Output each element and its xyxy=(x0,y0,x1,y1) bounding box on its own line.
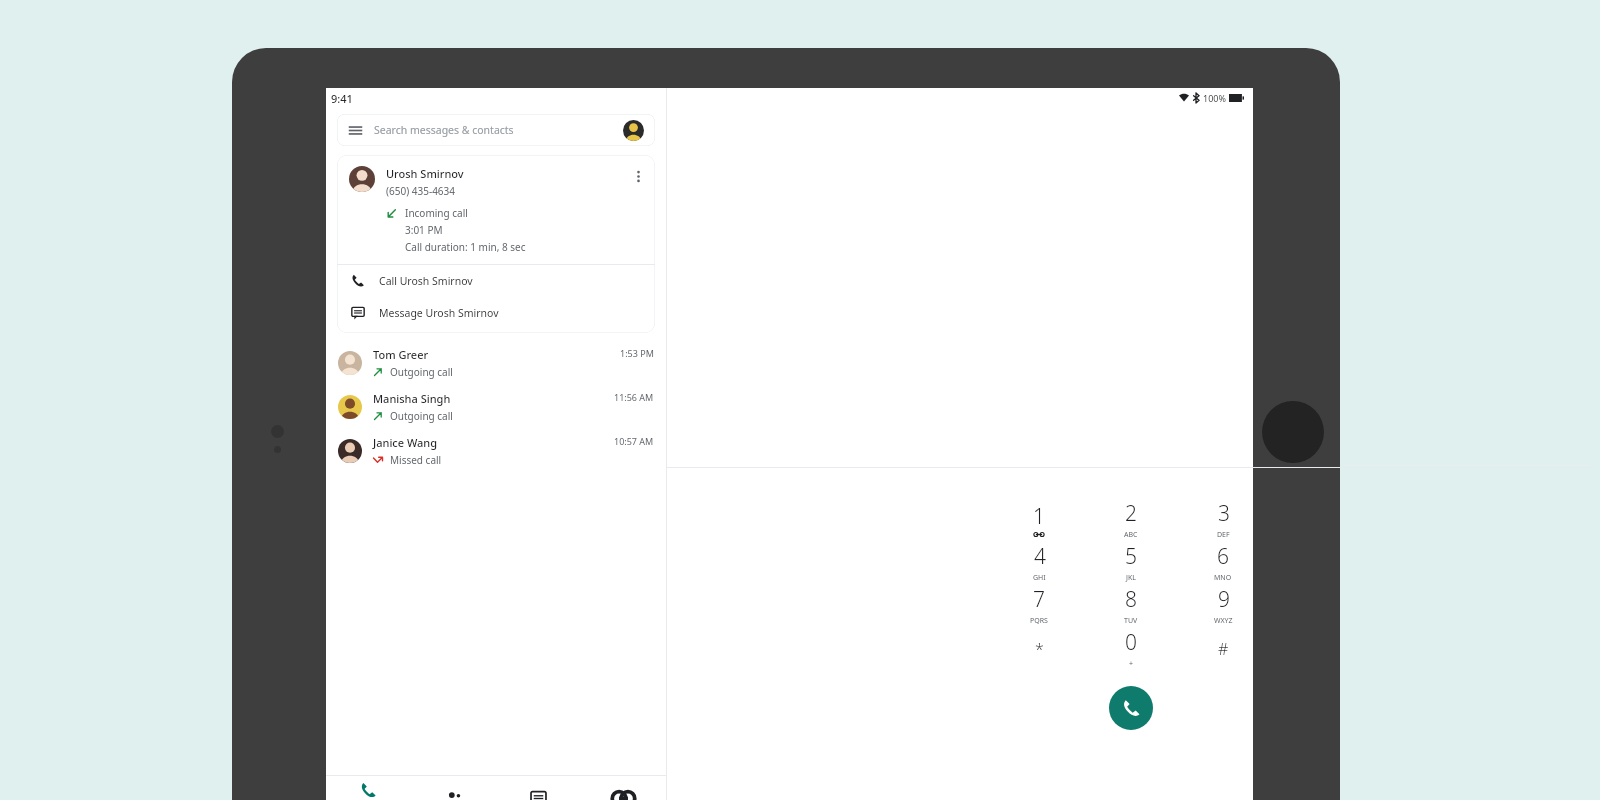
staticText: Tom Greer xyxy=(373,347,429,362)
button[interactable]: More options xyxy=(628,166,648,186)
staticText: Manisha Singh xyxy=(373,391,451,406)
staticText: + xyxy=(1129,659,1134,669)
staticText: 4 xyxy=(1034,542,1046,571)
staticText: Janice Wang xyxy=(373,435,438,450)
staticText: 9:41 xyxy=(331,91,353,106)
button[interactable]: Call Urosh Smirnov xyxy=(337,265,655,297)
staticText: 9 xyxy=(1218,585,1230,614)
staticText: Search messages & contacts xyxy=(374,123,514,137)
button[interactable]: Voicemail xyxy=(581,776,666,800)
staticText: 6 xyxy=(1217,542,1229,571)
button[interactable]: * xyxy=(1008,627,1070,670)
button[interactable]: Tom Greer xyxy=(326,341,666,385)
button[interactable]: 6 xyxy=(1192,541,1254,584)
staticText: * xyxy=(1035,638,1044,660)
staticText: 2 xyxy=(1125,499,1137,528)
button[interactable]: Call xyxy=(1109,686,1153,730)
other: Menu xyxy=(348,123,363,138)
staticText: Outgoing call xyxy=(390,409,453,423)
button[interactable]: Menu xyxy=(337,114,655,146)
staticText: Missed call xyxy=(390,453,442,467)
staticText: ABC xyxy=(1124,530,1138,540)
button[interactable]: Calls xyxy=(326,776,411,800)
staticText: (650) 435-4634 xyxy=(386,184,456,198)
staticText: 0 xyxy=(1125,628,1137,657)
button[interactable]: 0 xyxy=(1100,627,1162,670)
staticText: MNO xyxy=(1214,573,1232,583)
staticText: 1:53 PM xyxy=(620,347,654,359)
staticText: 3:01 PM xyxy=(405,223,443,237)
staticText: Message Urosh Smirnov xyxy=(379,306,499,320)
staticText: 8 xyxy=(1125,585,1137,614)
button[interactable]: Messages xyxy=(496,776,581,800)
staticText: Call duration: 1 min, 8 sec xyxy=(405,240,526,254)
staticText: WXYZ xyxy=(1214,616,1233,626)
button[interactable]: 5 xyxy=(1100,541,1162,584)
staticText: GHI xyxy=(1033,573,1046,583)
staticText: Incoming call xyxy=(405,206,468,220)
staticText: Urosh Smirnov xyxy=(386,166,464,181)
staticText: DEF xyxy=(1217,530,1230,540)
button[interactable]: 1 xyxy=(1008,498,1070,541)
staticText: 7 xyxy=(1033,585,1045,614)
button[interactable]: Account xyxy=(623,120,644,141)
button[interactable]: Manisha Singh xyxy=(326,385,666,429)
button[interactable]: 7 xyxy=(1008,584,1070,627)
button[interactable]: Contacts xyxy=(411,776,496,800)
staticText: 3 xyxy=(1218,499,1230,528)
staticText: 1 xyxy=(1033,502,1045,531)
button[interactable]: Janice Wang xyxy=(326,429,666,473)
staticText: Call Urosh Smirnov xyxy=(379,274,473,288)
staticText: 10:57 AM xyxy=(614,435,654,447)
button[interactable]: Message Urosh Smirnov xyxy=(337,297,655,329)
staticText: 11:56 AM xyxy=(614,391,654,403)
staticText: 100% xyxy=(1203,92,1226,104)
button[interactable]: 2 xyxy=(1100,498,1162,541)
staticText: JKL xyxy=(1126,573,1136,583)
staticText: TUV xyxy=(1124,616,1138,626)
staticText: Outgoing call xyxy=(390,365,453,379)
button[interactable]: 9 xyxy=(1192,584,1254,627)
staticText: 5 xyxy=(1125,542,1137,571)
button[interactable]: 8 xyxy=(1100,584,1162,627)
staticText: PQRS xyxy=(1030,616,1048,626)
staticText: # xyxy=(1218,638,1229,660)
button[interactable]: Urosh Smirnov xyxy=(337,155,655,264)
button[interactable]: 4 xyxy=(1008,541,1070,584)
button[interactable]: 3 xyxy=(1192,498,1254,541)
button[interactable]: # xyxy=(1192,627,1254,670)
